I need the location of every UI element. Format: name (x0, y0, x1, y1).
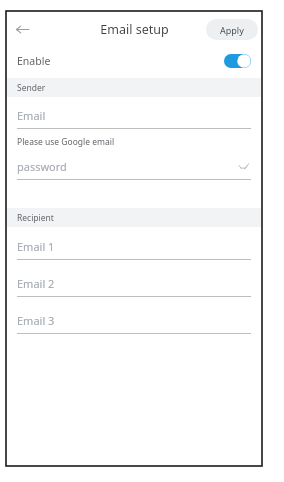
staticText: Email (17, 108, 46, 123)
button[interactable]: Apply (206, 19, 258, 40)
staticText: Sender (17, 82, 46, 94)
staticText: Email 1 (17, 239, 55, 254)
staticText: Enable (17, 54, 51, 68)
button[interactable]: Back (9, 16, 35, 42)
staticText: Email 3 (17, 313, 55, 328)
button[interactable]: Email 1 (7, 233, 261, 260)
button[interactable]: Enable (7, 46, 261, 76)
button[interactable]: Email (7, 102, 261, 129)
button[interactable]: Email 2 (7, 270, 261, 297)
staticText: Email 2 (17, 276, 55, 291)
button[interactable]: Show password (235, 158, 251, 174)
staticText: Recipient (17, 212, 54, 224)
staticText: Email setup (100, 21, 169, 38)
button[interactable]: password (7, 153, 261, 180)
other: Enable toggle (224, 54, 251, 68)
staticText: password (17, 159, 67, 174)
staticText: Apply (220, 24, 244, 36)
button[interactable]: Email 3 (7, 307, 261, 334)
staticText: Please use Google email (17, 136, 115, 148)
